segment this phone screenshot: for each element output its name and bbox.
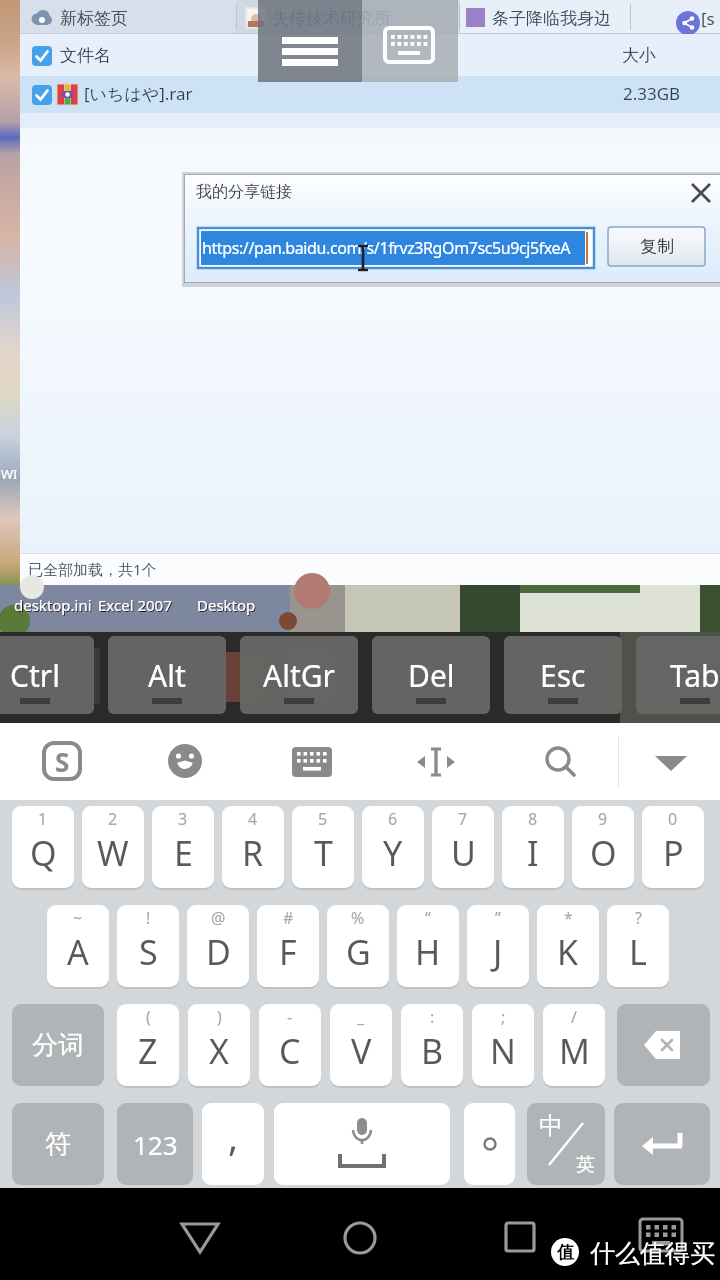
staticText: P <box>663 830 684 876</box>
button[interactable]: S <box>117 905 179 987</box>
button[interactable] <box>640 1219 682 1253</box>
button[interactable]: U <box>432 806 494 888</box>
staticText: 4 <box>248 808 258 828</box>
staticText: R <box>242 830 264 876</box>
staticText: ” <box>495 907 501 927</box>
button[interactable]: D <box>187 905 249 987</box>
button[interactable]: 复制 <box>608 227 705 266</box>
staticText: E <box>174 830 193 876</box>
button[interactable] <box>676 11 700 35</box>
button[interactable]: Del <box>372 636 490 714</box>
button[interactable]: 中 <box>527 1103 605 1185</box>
staticText: : <box>430 1006 435 1026</box>
button[interactable]: X <box>188 1004 250 1086</box>
button[interactable]: , <box>202 1103 264 1185</box>
button[interactable] <box>20 34 720 77</box>
staticText: ? <box>635 907 642 927</box>
staticText: 大小 <box>622 45 656 66</box>
button[interactable]: F <box>257 905 319 987</box>
staticText: X <box>209 1028 229 1074</box>
staticText: Esc <box>540 655 586 696</box>
button[interactable] <box>650 750 692 776</box>
button[interactable]: Z <box>117 1004 179 1086</box>
button[interactable]: L <box>607 905 669 987</box>
button[interactable]: Ctrl <box>0 636 94 714</box>
button[interactable]: 符 <box>12 1103 104 1185</box>
staticText: ; <box>501 1006 506 1026</box>
button[interactable] <box>617 1004 710 1086</box>
staticText: J <box>493 929 503 975</box>
button[interactable]: K <box>537 905 599 987</box>
staticText: G <box>346 929 371 975</box>
button[interactable]: AltGr <box>240 636 358 714</box>
staticText: 7 <box>458 808 468 828</box>
staticText: Q <box>30 830 57 876</box>
button[interactable] <box>504 1221 536 1253</box>
staticText: 2.33GB <box>623 82 681 105</box>
button[interactable]: P <box>642 806 704 888</box>
staticText: Alt <box>148 655 186 696</box>
button[interactable]: O <box>572 806 634 888</box>
staticText: 条子降临我身边 <box>492 8 611 29</box>
button[interactable]: M <box>543 1004 605 1086</box>
button[interactable] <box>292 747 332 777</box>
button[interactable] <box>543 744 579 780</box>
button[interactable]: E <box>152 806 214 888</box>
button[interactable] <box>32 46 52 66</box>
button[interactable]: R <box>222 806 284 888</box>
staticText: * <box>564 907 573 927</box>
button[interactable]: W <box>82 806 144 888</box>
button[interactable]: S <box>42 741 82 781</box>
button[interactable]: Y <box>362 806 424 888</box>
button[interactable] <box>464 1103 515 1185</box>
button[interactable] <box>32 85 52 105</box>
button[interactable]: G <box>327 905 389 987</box>
staticText: - <box>287 1006 293 1026</box>
staticText: desktop.ini <box>14 595 92 615</box>
staticText: 3 <box>178 808 188 828</box>
button[interactable] <box>274 1103 450 1185</box>
button[interactable] <box>362 0 458 82</box>
staticText: V <box>351 1028 372 1074</box>
button[interactable]: H <box>397 905 459 987</box>
staticText: [いちはや].rar <box>84 82 193 105</box>
staticText: 什么值得买 <box>590 1238 715 1269</box>
staticText: _ <box>357 1006 365 1026</box>
button[interactable]: I <box>502 806 564 888</box>
button[interactable] <box>20 77 720 113</box>
button[interactable] <box>167 743 203 779</box>
button[interactable]: V <box>330 1004 392 1086</box>
button[interactable] <box>415 745 457 779</box>
button[interactable]: C <box>259 1004 321 1086</box>
button[interactable] <box>688 180 714 206</box>
staticText: Excel 2007 <box>99 596 173 616</box>
button[interactable]: Q <box>12 806 74 888</box>
button[interactable]: 123 <box>117 1103 193 1185</box>
staticText: Desktop <box>198 596 257 616</box>
staticText: 5 <box>318 808 328 828</box>
staticText: T <box>314 830 333 876</box>
button[interactable]: 分词 <box>12 1004 104 1086</box>
button[interactable]: J <box>467 905 529 987</box>
staticText: Del <box>408 655 455 696</box>
button[interactable] <box>20 0 236 34</box>
staticText: WI <box>1 465 18 483</box>
button[interactable]: Alt <box>108 636 226 714</box>
staticText: B <box>421 1028 444 1074</box>
button[interactable]: Esc <box>504 636 622 714</box>
button[interactable]: T <box>292 806 354 888</box>
staticText: ) <box>217 1006 222 1026</box>
staticText: 6 <box>388 808 398 828</box>
button[interactable]: Tab <box>636 636 720 714</box>
button[interactable] <box>614 1103 710 1185</box>
button[interactable]: B <box>401 1004 463 1086</box>
button[interactable] <box>342 1220 378 1256</box>
button[interactable] <box>178 1218 222 1258</box>
button[interactable] <box>258 0 362 82</box>
staticText: Y <box>383 830 403 876</box>
button[interactable]: A <box>47 905 109 987</box>
staticText: S <box>139 929 158 975</box>
button[interactable]: N <box>472 1004 534 1086</box>
staticText: ( <box>146 1006 151 1026</box>
